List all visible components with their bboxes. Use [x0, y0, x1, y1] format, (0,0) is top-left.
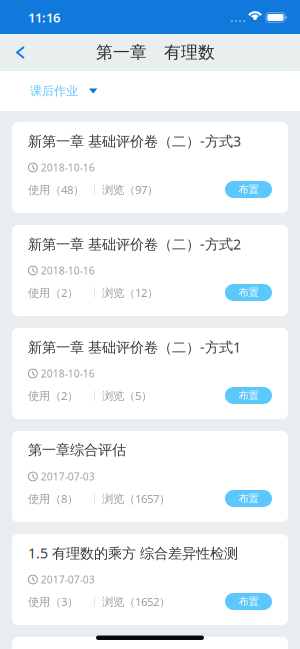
staticText: 布置	[238, 183, 258, 196]
staticText: 浏览（1652）	[102, 594, 170, 609]
staticText: 新第一章 基础评价卷（二）-方式1	[28, 337, 241, 357]
staticText: 浏览（1657）	[102, 491, 170, 506]
staticText: 布置	[238, 492, 258, 505]
staticText: 新第一章 基础评价卷（二）-方式2	[28, 234, 241, 254]
staticText: 布置	[238, 286, 258, 299]
staticText: 浏览（5）	[102, 388, 152, 403]
staticText: 使用（8）	[28, 491, 78, 506]
staticText: 使用（3）	[28, 594, 78, 609]
staticText: 2017-07-03	[41, 470, 95, 483]
button[interactable]: Back	[0, 34, 41, 71]
button[interactable]: 新第一章 基础评价卷（二）-方式3	[12, 122, 288, 213]
button[interactable]: 布置	[225, 490, 272, 507]
staticText: 使用（48）	[28, 182, 84, 197]
staticText: 第一章 有理数	[96, 42, 215, 63]
staticText: 课后作业	[30, 83, 78, 98]
button[interactable]: 布置	[225, 387, 272, 404]
button[interactable]: 新第一章 基础评价卷（二）-方式2	[12, 225, 288, 316]
staticText: 2018-10-16	[41, 264, 95, 277]
staticText: 布置	[238, 595, 258, 608]
button[interactable]: 第一章综合评估	[12, 431, 288, 522]
button[interactable]: 新第一章 基础评价卷（二）-方式1	[12, 328, 288, 419]
button[interactable]: 课后作业	[16, 72, 111, 109]
staticText: 使用（2）	[28, 388, 78, 403]
staticText: 2018-10-16	[41, 367, 95, 380]
staticText: 浏览（12）	[102, 285, 158, 300]
button[interactable]: 布置	[225, 593, 272, 610]
staticText: 布置	[238, 389, 258, 402]
staticText: 使用（2）	[28, 285, 78, 300]
button[interactable]: 布置	[225, 181, 272, 198]
button[interactable]: 1.5 有理数的乘方 综合差异性检测	[12, 534, 288, 625]
staticText: 11:16	[28, 9, 60, 26]
staticText: 第一章综合评估	[28, 441, 126, 459]
staticText: 1.5 有理数的乘方 综合差异性检测	[28, 543, 238, 563]
button[interactable]: 布置	[225, 284, 272, 301]
staticText: 2017-07-03	[41, 573, 95, 586]
staticText: 新第一章 基础评价卷（二）-方式3	[28, 131, 241, 151]
staticText: 浏览（97）	[102, 182, 158, 197]
button[interactable]: 1.4 有理数的除法 综合差异性检测	[12, 637, 288, 649]
staticText: 2018-10-16	[41, 161, 95, 174]
